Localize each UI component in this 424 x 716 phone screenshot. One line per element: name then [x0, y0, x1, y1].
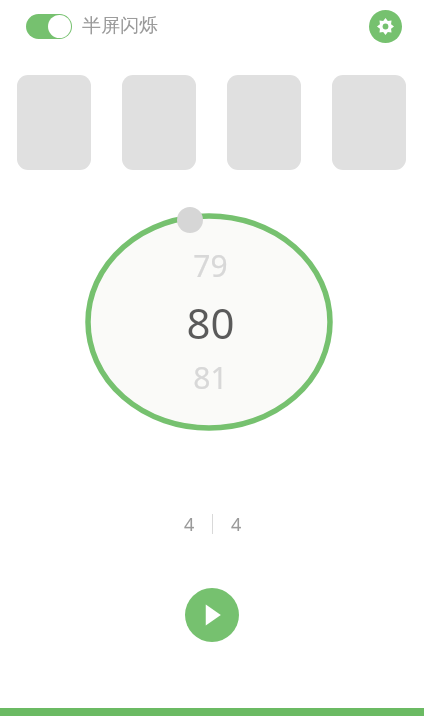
button[interactable] — [26, 14, 72, 39]
staticText: 81 — [193, 357, 228, 398]
staticText: 79 — [193, 245, 228, 286]
staticText: 半屏闪烁 — [82, 14, 158, 38]
button[interactable]: 4 — [166, 510, 212, 538]
staticText: 80 — [186, 294, 235, 351]
button[interactable]: Preset 1 — [17, 75, 91, 170]
button[interactable]: Preset 4 — [332, 75, 406, 170]
staticText: 4 — [231, 512, 242, 537]
button[interactable]: Settings — [369, 10, 402, 43]
button[interactable]: Play — [185, 588, 239, 642]
button[interactable]: Preset 2 — [122, 75, 196, 170]
staticText: 4 — [184, 512, 195, 537]
button[interactable]: Preset 3 — [227, 75, 301, 170]
button[interactable]: 4 — [213, 510, 259, 538]
